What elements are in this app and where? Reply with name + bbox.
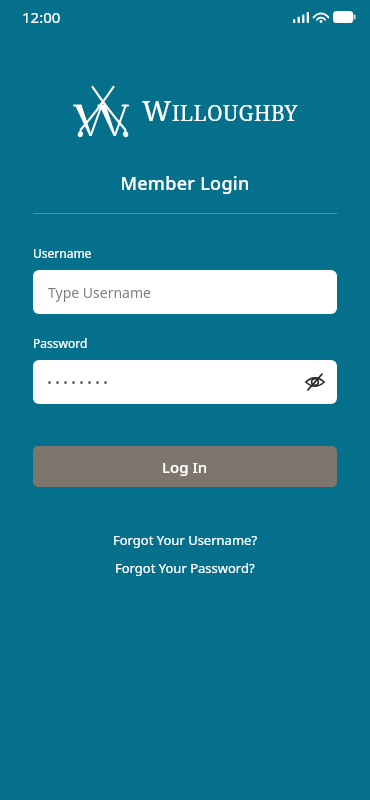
- staticText: Forgot Your Username?: [113, 531, 258, 549]
- staticText: Forgot Your Password?: [115, 559, 255, 577]
- staticText: Password: [33, 335, 88, 351]
- staticText: Type Username: [48, 283, 151, 302]
- staticText: Username: [33, 245, 92, 261]
- button[interactable]: Log In: [33, 446, 337, 487]
- button[interactable]: Forgot Your Username?: [0, 531, 370, 549]
- button[interactable]: Forgot Your Password?: [0, 559, 370, 577]
- staticText: Log In: [162, 457, 208, 477]
- button[interactable]: Type Username: [33, 270, 337, 314]
- button[interactable]: Show password: [33, 360, 337, 404]
- staticText: Member Login: [0, 171, 370, 196]
- staticText: W: [142, 91, 172, 129]
- button[interactable]: Show password: [293, 360, 337, 404]
- staticText: ILLOUGHBY: [172, 99, 298, 128]
- staticText: 12:00: [22, 7, 61, 27]
